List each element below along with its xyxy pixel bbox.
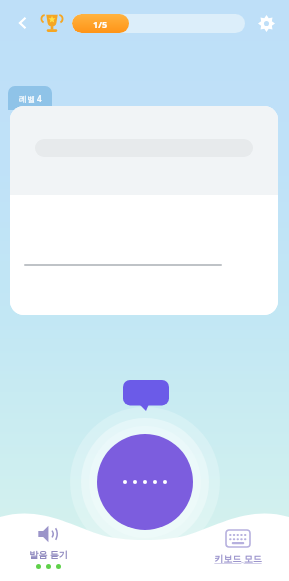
button[interactable]: 발음 듣기 xyxy=(14,523,82,569)
staticText: 레벨 4 xyxy=(19,93,42,104)
button[interactable]: Speak xyxy=(97,434,193,530)
staticText: 발음 듣기 xyxy=(29,548,68,560)
button[interactable]: Back xyxy=(10,10,36,36)
button[interactable]: Settings xyxy=(253,10,279,36)
staticText: 1/5 xyxy=(93,18,108,30)
button[interactable]: 1/5 xyxy=(72,14,245,33)
staticText: 키보드 모드 xyxy=(214,552,262,564)
button[interactable]: 키보드 모드 xyxy=(201,530,275,564)
button[interactable]: 레벨 4 xyxy=(8,86,52,110)
button[interactable]: Trophy xyxy=(38,9,66,37)
